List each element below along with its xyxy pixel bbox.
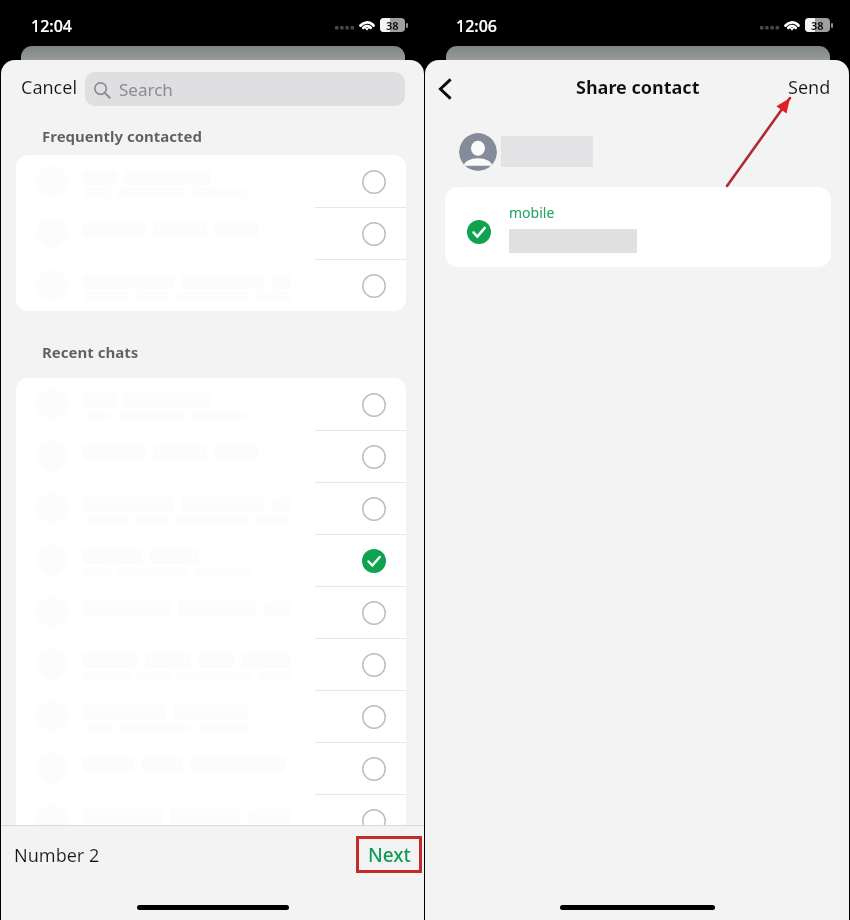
button[interactable]: mobile — [445, 187, 831, 267]
button[interactable] — [16, 482, 406, 534]
staticText: Send — [788, 75, 831, 100]
button[interactable] — [16, 155, 406, 207]
button[interactable] — [16, 430, 406, 482]
staticText: Frequently contacted — [42, 126, 203, 146]
staticText: Number 2 — [14, 843, 100, 868]
button[interactable] — [16, 742, 406, 794]
staticText: 12:06 — [456, 15, 497, 37]
button[interactable] — [16, 586, 406, 638]
button[interactable]: Back — [425, 69, 465, 109]
button[interactable] — [16, 259, 406, 311]
staticText: mobile — [509, 203, 555, 222]
button[interactable] — [16, 378, 406, 430]
button[interactable] — [16, 534, 406, 586]
button[interactable]: Cancel — [15, 67, 84, 108]
button[interactable] — [16, 794, 406, 846]
staticText: 38 — [386, 18, 399, 33]
staticText: Recent chats — [42, 342, 139, 362]
staticText: 38 — [811, 18, 824, 33]
staticText: Cancel — [21, 75, 78, 100]
staticText: Share contact — [576, 75, 700, 100]
button[interactable] — [16, 638, 406, 690]
staticText: Search — [119, 78, 173, 101]
staticText: 12:04 — [31, 15, 72, 37]
staticText: Next — [368, 842, 411, 868]
button[interactable] — [16, 207, 406, 259]
button[interactable]: Send — [774, 70, 849, 105]
button[interactable] — [16, 690, 406, 742]
button[interactable]: Search — [85, 72, 405, 106]
button[interactable]: Next — [356, 836, 422, 873]
